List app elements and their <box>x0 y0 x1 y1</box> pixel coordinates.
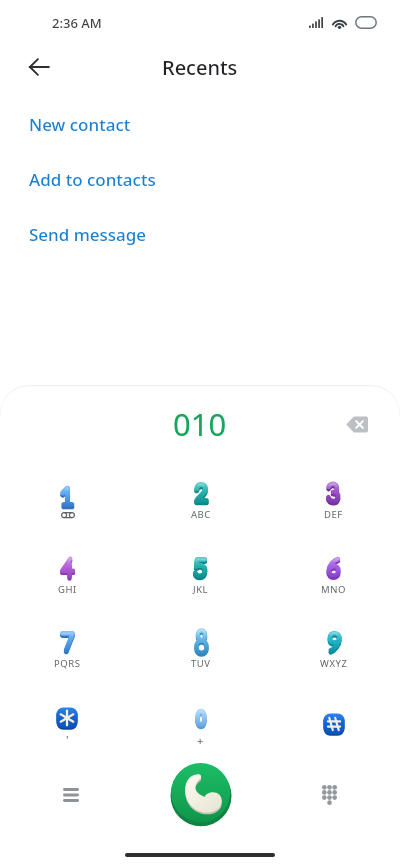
staticText: DEF <box>324 508 343 521</box>
staticText: PQRS <box>54 657 81 670</box>
button[interactable]: New contact <box>0 97 400 152</box>
staticText: ' <box>66 732 69 747</box>
button[interactable]: Backspace <box>336 404 376 444</box>
button[interactable]: MNO <box>267 531 400 605</box>
staticText: JKL <box>193 583 209 596</box>
button[interactable]: ABC <box>134 456 267 530</box>
staticText: + <box>197 733 204 748</box>
button[interactable]: Back <box>21 49 57 85</box>
button[interactable]: ' <box>0 680 134 754</box>
staticText: TUV <box>191 657 211 670</box>
staticText: WXYZ <box>320 657 348 670</box>
staticText: Recents <box>162 54 238 81</box>
staticText: Send message <box>29 223 147 246</box>
button[interactable] <box>0 456 134 530</box>
button[interactable]: PQRS <box>0 605 134 679</box>
button[interactable]: Call log <box>0 762 134 826</box>
button[interactable]: + <box>134 680 267 754</box>
button[interactable]: Dialpad <box>267 762 400 826</box>
button[interactable]: Add to contacts <box>0 152 400 207</box>
button[interactable]: Send message <box>0 207 400 262</box>
staticText: 2:36 AM <box>52 14 102 32</box>
button[interactable]: TUV <box>134 605 267 679</box>
staticText: MNO <box>321 583 346 596</box>
button[interactable]: WXYZ <box>267 605 400 679</box>
button[interactable]: DEF <box>267 456 400 530</box>
button[interactable]: GHI <box>0 531 134 605</box>
staticText: 010 <box>173 403 227 445</box>
staticText: Add to contacts <box>29 168 156 191</box>
button[interactable]: Call <box>169 762 233 826</box>
staticText: GHI <box>58 583 77 596</box>
button[interactable] <box>267 680 400 754</box>
staticText: New contact <box>29 113 131 136</box>
staticText: ABC <box>191 508 211 521</box>
button[interactable]: JKL <box>134 531 267 605</box>
